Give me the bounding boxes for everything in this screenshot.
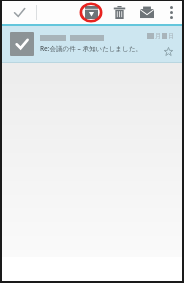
- staticText: 月: [155, 32, 161, 40]
- button[interactable]: Selected: [2, 26, 182, 62]
- staticText: 日: [168, 32, 174, 40]
- button[interactable]: Delete: [106, 1, 133, 24]
- button[interactable]: Done: [2, 1, 36, 24]
- staticText: Re:会議の件 – 承知いたしました。: [40, 44, 142, 53]
- button[interactable]: Archive: [76, 1, 106, 24]
- button[interactable]: More options: [160, 1, 182, 24]
- button[interactable]: Selected: [10, 32, 34, 56]
- button[interactable]: Mark as read: [133, 1, 160, 24]
- button[interactable]: Star: [162, 45, 174, 57]
